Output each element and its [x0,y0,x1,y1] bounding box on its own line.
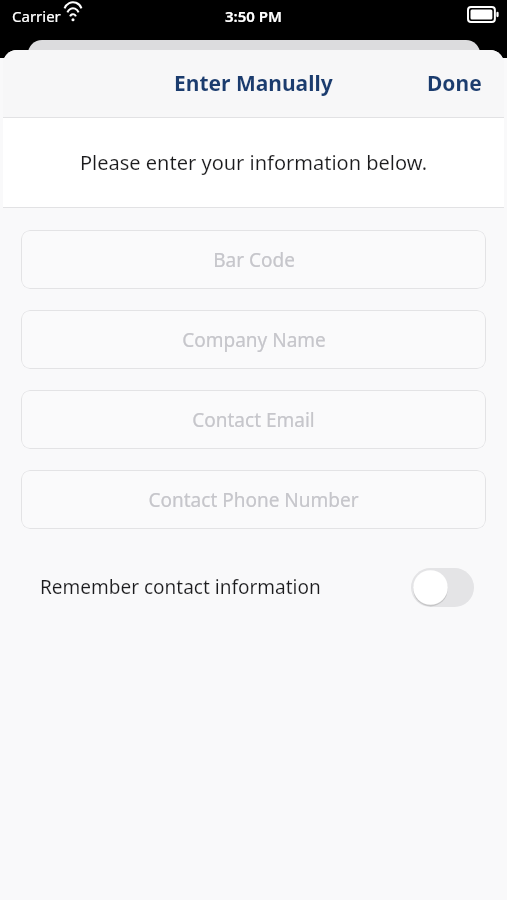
staticText: Carrier [12,6,61,26]
other: Wi-Fi signal [64,7,82,22]
staticText: Bar Code [213,247,295,273]
staticText: Contact Email [192,407,315,433]
button[interactable]: Enter Manually [162,63,345,104]
button[interactable]: Remember contact information [3,561,504,613]
button[interactable]: Company Name [21,310,486,369]
button[interactable]: Done [417,61,492,106]
staticText: 3:50 PM [0,6,507,26]
other: Battery full [468,7,500,22]
staticText: Contact Phone Number [148,487,359,513]
staticText: Remember contact information [40,574,321,600]
staticText: Done [427,69,482,98]
button[interactable]: Bar Code [21,230,486,289]
staticText: Please enter your information below. [3,149,504,176]
staticText: Enter Manually [174,69,333,98]
other: Remember contact information toggle, off [411,568,474,607]
button[interactable]: Contact Email [21,390,486,449]
staticText: Company Name [182,327,326,353]
button[interactable]: Contact Phone Number [21,470,486,529]
